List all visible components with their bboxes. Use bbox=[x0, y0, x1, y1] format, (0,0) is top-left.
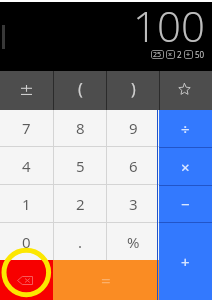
button[interactable]: ) bbox=[107, 71, 159, 110]
button[interactable]: Favourites bbox=[160, 71, 212, 110]
staticText: 7 bbox=[22, 118, 31, 138]
staticText: − bbox=[181, 194, 190, 214]
staticText: + bbox=[181, 252, 190, 272]
button[interactable]: 8 bbox=[54, 110, 106, 146]
button[interactable]: . bbox=[54, 223, 106, 260]
button[interactable]: 7 bbox=[0, 110, 53, 146]
staticText: 1 bbox=[22, 194, 31, 214]
staticText: 2 bbox=[76, 194, 85, 214]
staticText: 6 bbox=[129, 156, 138, 176]
staticText: 4 bbox=[22, 156, 31, 176]
button[interactable]: + bbox=[186, 50, 191, 59]
button[interactable]: 2 bbox=[54, 185, 106, 222]
button[interactable]: 6 bbox=[107, 147, 159, 184]
staticText: 9 bbox=[129, 118, 138, 138]
staticText: . bbox=[78, 232, 83, 252]
button[interactable]: 25 bbox=[153, 50, 162, 59]
button[interactable]: % bbox=[107, 223, 159, 260]
button[interactable]: 9 bbox=[107, 110, 159, 146]
staticText: ) bbox=[131, 78, 136, 100]
staticText: 2 bbox=[177, 49, 182, 60]
button[interactable]: = bbox=[53, 260, 159, 300]
staticText: 25 bbox=[153, 50, 162, 59]
staticText: 0 bbox=[22, 232, 31, 252]
staticText: 3 bbox=[129, 194, 138, 214]
staticText: % bbox=[127, 232, 140, 252]
button[interactable]: Backspace bbox=[0, 260, 53, 300]
button[interactable]: 0 bbox=[0, 223, 53, 260]
staticText: ( bbox=[78, 78, 83, 100]
staticText: 100 bbox=[133, 0, 205, 54]
staticText: + bbox=[186, 50, 191, 59]
staticText: ÷ bbox=[181, 119, 190, 139]
button[interactable]: 5 bbox=[54, 147, 106, 184]
staticText: = bbox=[101, 269, 111, 292]
button[interactable]: 3 bbox=[107, 185, 159, 222]
button[interactable]: 1 bbox=[0, 185, 53, 222]
button[interactable]: ÷ bbox=[159, 110, 212, 147]
button[interactable]: 4 bbox=[0, 147, 53, 184]
button[interactable]: Plus minus sign bbox=[0, 71, 53, 110]
staticText: 50 bbox=[195, 49, 205, 60]
staticText: 8 bbox=[76, 118, 85, 138]
button[interactable]: ( bbox=[54, 71, 106, 110]
staticText: × bbox=[168, 50, 173, 59]
button[interactable]: − bbox=[159, 186, 212, 222]
staticText: × bbox=[181, 157, 190, 177]
button[interactable]: + bbox=[159, 223, 212, 300]
button[interactable]: × bbox=[159, 148, 212, 185]
button[interactable]: × bbox=[168, 50, 173, 59]
staticText: 5 bbox=[76, 156, 85, 176]
